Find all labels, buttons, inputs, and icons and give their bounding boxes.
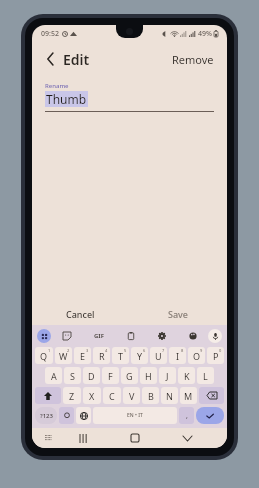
button[interactable]: W xyxy=(55,347,72,364)
other: Backspace xyxy=(207,392,217,399)
staticText: A xyxy=(51,370,57,382)
button[interactable]: F xyxy=(102,367,119,384)
staticText: 2 xyxy=(67,348,70,353)
staticText: 3 xyxy=(86,348,89,353)
button[interactable]: Themes xyxy=(177,327,208,345)
staticText: 8 xyxy=(181,348,184,353)
staticText: L xyxy=(203,370,208,382)
button[interactable]: Home xyxy=(109,428,161,448)
staticText: Remove xyxy=(172,52,214,67)
button[interactable]: O xyxy=(188,347,205,364)
button[interactable]: A xyxy=(45,367,62,384)
staticText: F xyxy=(108,370,113,382)
button[interactable]: E xyxy=(74,347,91,364)
staticText: W xyxy=(59,350,68,362)
button[interactable]: M xyxy=(180,387,197,404)
button[interactable]: EN • IT xyxy=(93,407,177,424)
staticText: M xyxy=(184,390,193,402)
button[interactable]: Shift xyxy=(35,387,61,404)
staticText: Y xyxy=(137,350,143,362)
staticText: 0 xyxy=(219,348,222,353)
staticText: Cancel xyxy=(66,308,95,320)
staticText: Z xyxy=(69,390,75,402)
staticText: 49% xyxy=(198,29,212,39)
staticText: G xyxy=(126,370,133,382)
button[interactable]: Keyboard modes xyxy=(37,329,51,343)
button[interactable]: R xyxy=(93,347,110,364)
button[interactable]: P xyxy=(207,347,224,364)
staticText: Q xyxy=(40,350,48,362)
button[interactable]: V xyxy=(123,387,140,404)
button[interactable]: L xyxy=(197,367,214,384)
button[interactable]: D xyxy=(83,367,100,384)
button[interactable]: X xyxy=(83,387,101,404)
staticText: R xyxy=(99,350,105,362)
staticText: Rename xyxy=(45,82,69,90)
button[interactable]: Done xyxy=(196,407,224,424)
staticText: Edit xyxy=(63,50,90,69)
button[interactable]: Settings xyxy=(146,327,177,345)
staticText: GIF xyxy=(94,332,104,340)
staticText: V xyxy=(129,390,135,402)
staticText: I xyxy=(176,350,180,362)
staticText: 9 xyxy=(200,348,203,353)
staticText: 7 xyxy=(162,348,165,353)
button[interactable]: I xyxy=(169,347,186,364)
button[interactable]: Y xyxy=(131,347,148,364)
button[interactable]: Q xyxy=(35,347,53,364)
button[interactable]: ?123 xyxy=(35,407,57,424)
staticText: B xyxy=(148,390,154,402)
staticText: N xyxy=(166,390,173,402)
staticText: 5 xyxy=(124,348,127,353)
staticText: O xyxy=(193,350,201,362)
button[interactable]: Hide keyboard xyxy=(40,430,56,446)
button[interactable]: H xyxy=(140,367,157,384)
staticText: Thumb xyxy=(46,91,87,107)
staticText: 6 xyxy=(143,348,146,353)
staticText: S xyxy=(70,370,75,382)
button[interactable]: B xyxy=(142,387,159,404)
staticText: D xyxy=(88,370,95,382)
button[interactable]: J xyxy=(159,367,176,384)
button[interactable]: Remove xyxy=(169,47,217,72)
staticText: EN • IT xyxy=(127,412,143,419)
staticText: , xyxy=(186,411,188,421)
staticText: K xyxy=(184,370,190,382)
staticText: 4 xyxy=(105,348,108,353)
staticText: C xyxy=(109,390,115,402)
staticText: 09:52 xyxy=(41,29,59,39)
staticText: T xyxy=(118,350,124,362)
button[interactable]: Change language xyxy=(76,407,91,424)
button[interactable]: Recents xyxy=(56,428,109,448)
button[interactable]: Back xyxy=(161,428,213,448)
button[interactable]: U xyxy=(150,347,167,364)
button[interactable]: Save xyxy=(129,303,227,325)
staticText: E xyxy=(80,350,86,362)
button[interactable]: S xyxy=(64,367,81,384)
button[interactable]: Thumb xyxy=(45,91,88,107)
staticText: ?123 xyxy=(40,412,53,420)
button[interactable]: N xyxy=(161,387,178,404)
button[interactable]: Back xyxy=(42,46,58,72)
staticText: H xyxy=(145,370,152,382)
staticText: 1 xyxy=(48,348,51,353)
staticText: Save xyxy=(168,308,189,320)
button[interactable]: C xyxy=(103,387,121,404)
staticText: J xyxy=(166,370,169,382)
button[interactable]: Comma xyxy=(179,407,194,424)
staticText: U xyxy=(155,350,162,362)
button[interactable]: Emoji xyxy=(59,407,74,424)
button[interactable]: Clipboard xyxy=(115,327,146,345)
button[interactable]: Backspace xyxy=(199,387,224,404)
button[interactable]: T xyxy=(112,347,129,364)
button[interactable]: Cancel xyxy=(32,303,129,325)
staticText: X xyxy=(89,390,95,402)
button[interactable]: G xyxy=(121,367,138,384)
other: Shift xyxy=(44,392,52,400)
button[interactable]: GIF xyxy=(83,327,115,345)
button[interactable]: Voice input xyxy=(208,329,222,343)
button[interactable]: K xyxy=(178,367,195,384)
staticText: P xyxy=(213,350,219,362)
button[interactable]: Stickers xyxy=(51,327,83,345)
button[interactable]: Z xyxy=(63,387,81,404)
